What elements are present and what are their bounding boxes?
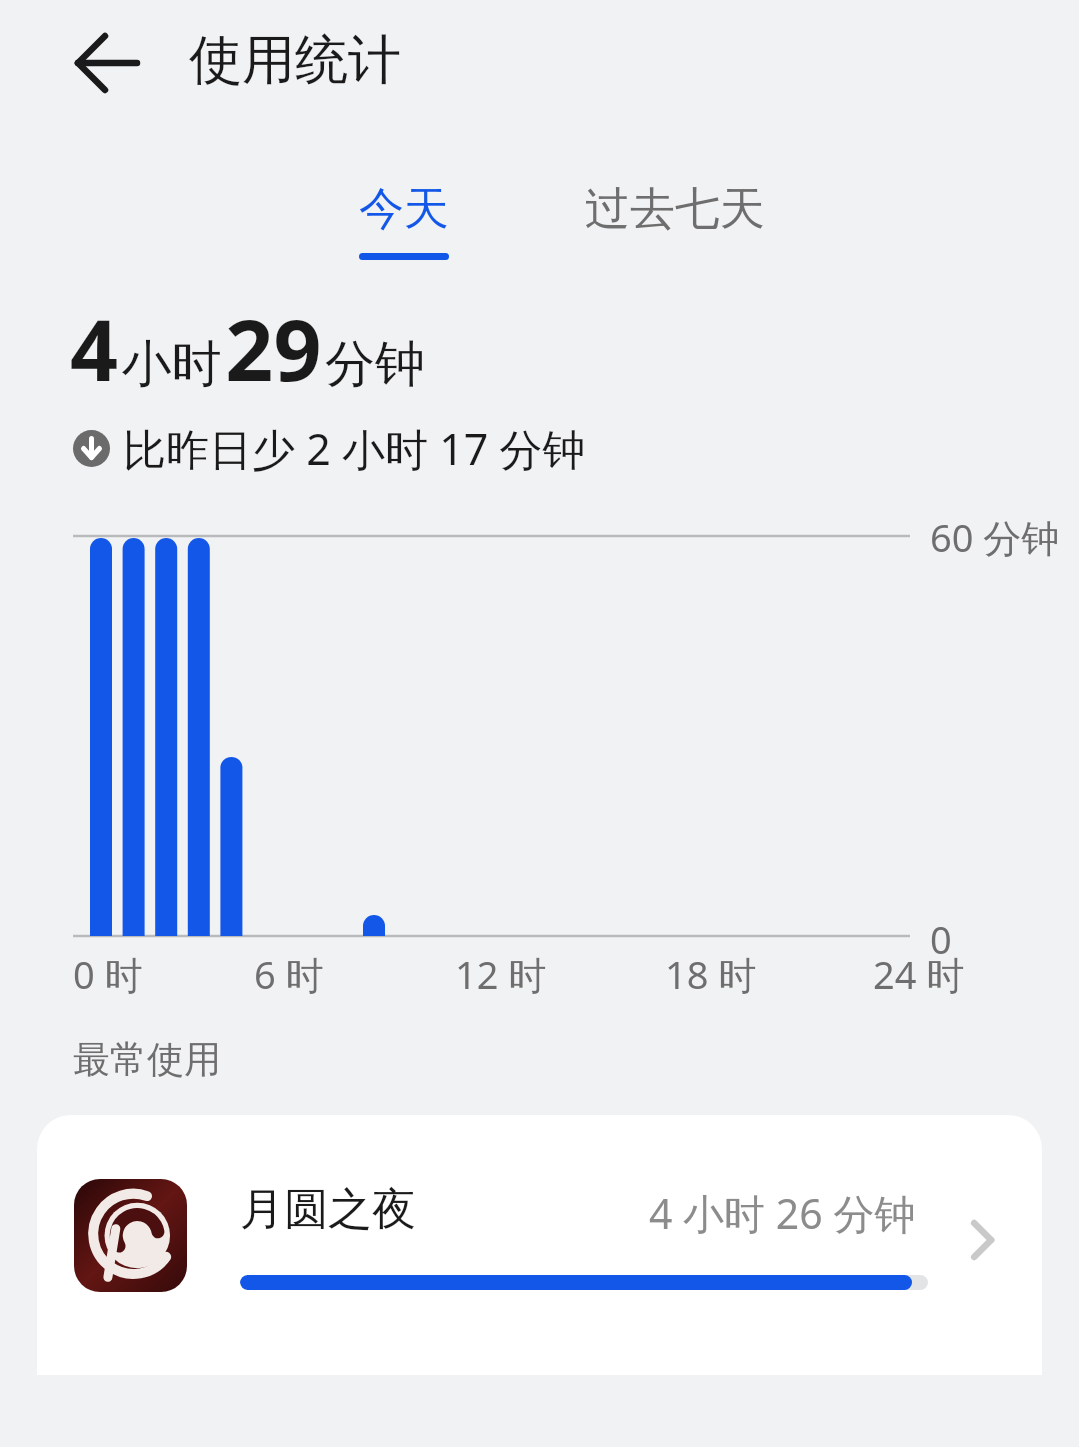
staticText: 12 时	[455, 948, 547, 1000]
button[interactable]: 今天	[319, 181, 489, 260]
staticText: 过去七天	[585, 181, 765, 238]
staticText: 使用统计	[189, 27, 401, 94]
staticText: 24 时	[873, 948, 965, 1000]
button[interactable]: Back	[57, 13, 157, 113]
button[interactable]: 过去七天	[560, 181, 790, 253]
staticText: 60 分钟	[930, 511, 1060, 563]
staticText: 6 时	[254, 948, 324, 1000]
staticText: 最常使用	[73, 1036, 221, 1083]
button[interactable]: Open app details	[965, 1219, 1007, 1261]
staticText: 18 时	[665, 948, 757, 1000]
staticText: 0 时	[73, 948, 143, 1000]
staticText: 4 小时 26 分钟	[649, 1185, 916, 1241]
staticText: 月圆之夜	[240, 1182, 416, 1237]
staticText: 今天	[359, 181, 449, 238]
staticText: 0	[930, 913, 952, 965]
button[interactable]: 月圆之夜	[37, 1115, 1042, 1375]
staticText: 4 小时 29 分钟	[70, 291, 426, 405]
staticText: 比昨日少 2 小时 17 分钟	[123, 419, 586, 478]
